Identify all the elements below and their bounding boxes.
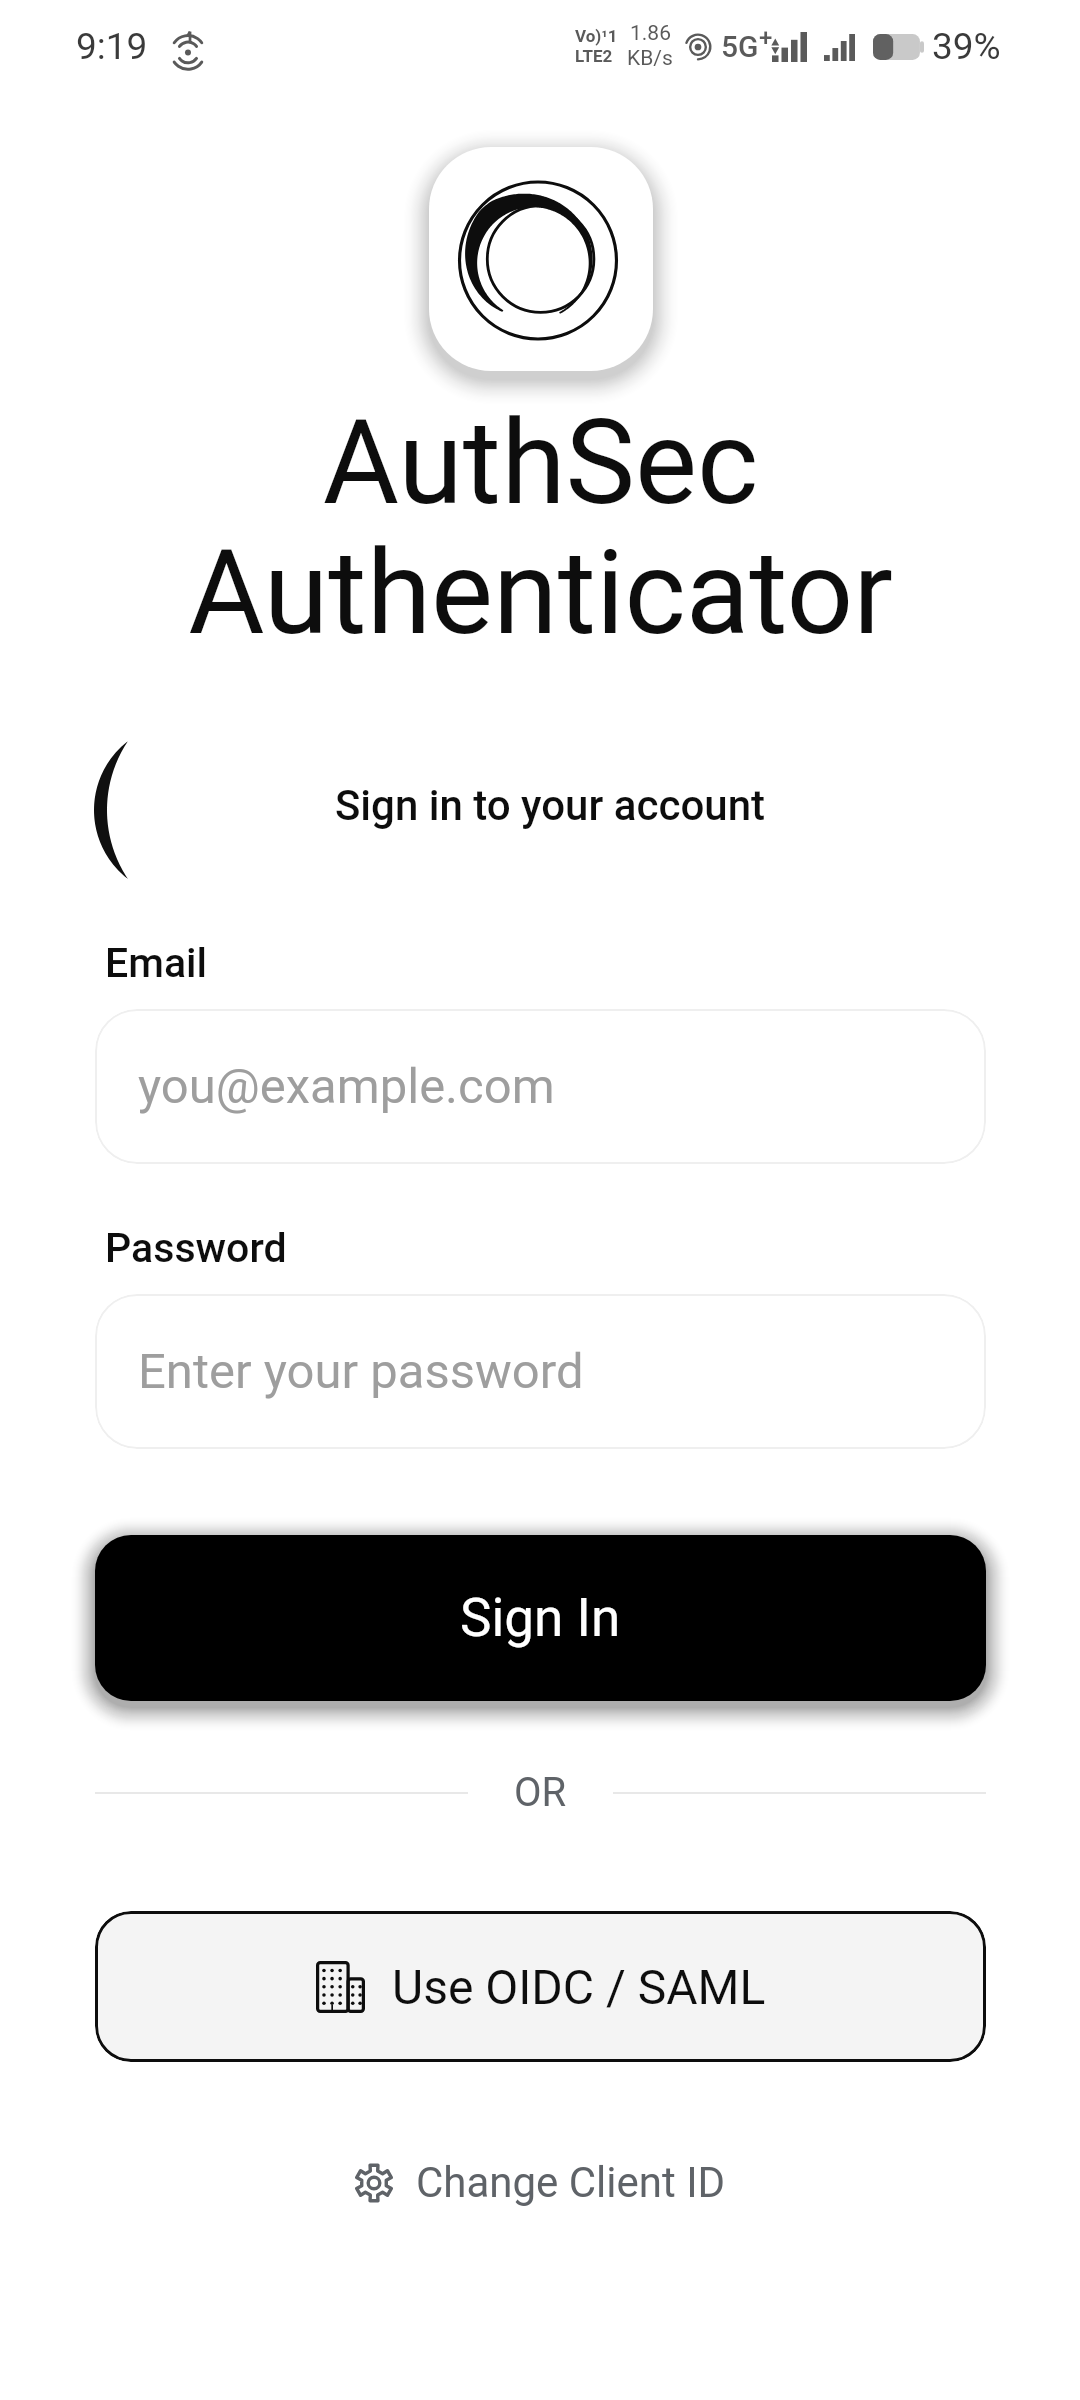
staticText: Password (105, 1224, 287, 1272)
button[interactable]: Enter your password (95, 1294, 986, 1449)
button[interactable]: Change Client ID (334, 2142, 746, 2223)
staticText: LTE2 (575, 46, 613, 66)
staticText: AuthSec Authenticator (188, 394, 893, 661)
staticText: + (759, 24, 773, 52)
staticText: OR (514, 1769, 567, 1816)
button[interactable]: Sign In (95, 1535, 986, 1701)
staticText: you@example.com (138, 1058, 555, 1115)
button[interactable]: you@example.com (95, 1009, 986, 1164)
staticText: Change Client ID (416, 2158, 726, 2207)
button[interactable]: Use OIDC / SAML (95, 1911, 986, 2062)
staticText: Enter your password (138, 1343, 584, 1400)
staticText: Sign in to your account (335, 781, 766, 830)
staticText: 9:19 (76, 25, 148, 68)
staticText: Use OIDC / SAML (392, 1959, 766, 2015)
staticText: KB/s (627, 46, 673, 71)
staticText: 1.86 (630, 21, 671, 46)
staticText: 39% (932, 25, 1001, 68)
staticText: Sign In (460, 1587, 621, 1649)
other: Vibrate (172, 26, 206, 66)
staticText: 5G (721, 29, 759, 64)
staticText: Email (105, 939, 208, 987)
staticText: Vo)¹1 (575, 26, 618, 46)
